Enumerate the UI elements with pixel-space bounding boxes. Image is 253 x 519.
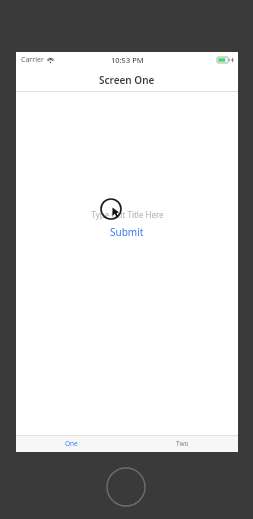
- staticText: Carrier: [21, 55, 44, 65]
- button[interactable]: Two: [127, 435, 238, 452]
- staticText: One: [65, 439, 78, 448]
- staticText: 10:53 PM: [111, 55, 144, 65]
- other: Pointer: [100, 198, 122, 220]
- staticText: Type Out Title Here: [91, 209, 164, 220]
- staticText: Screen One: [99, 73, 155, 87]
- button[interactable]: One: [16, 435, 127, 452]
- button[interactable]: Submit: [106, 224, 148, 240]
- staticText: Submit: [110, 225, 144, 239]
- staticText: Two: [176, 439, 189, 448]
- other: Home: [105, 466, 147, 508]
